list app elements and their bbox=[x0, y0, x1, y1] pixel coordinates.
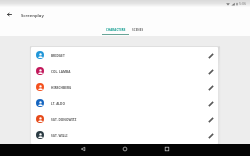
button[interactable]: LT. ALDO bbox=[31, 95, 218, 111]
button[interactable]: Edit bbox=[205, 50, 217, 62]
button[interactable]: Edit bbox=[205, 130, 217, 142]
button[interactable]: Edit bbox=[205, 66, 217, 78]
staticText: HIRSCHBERG bbox=[51, 86, 72, 90]
staticText: 5:06 bbox=[239, 1, 247, 6]
staticText: COL. LAMBA bbox=[51, 70, 71, 74]
button[interactable]: SCENES bbox=[131, 24, 144, 36]
button[interactable]: Edit bbox=[205, 98, 217, 110]
button[interactable]: SGT. DONOWITZ bbox=[31, 111, 218, 127]
button[interactable]: CHARACTERS bbox=[102, 24, 129, 36]
button[interactable]: Home bbox=[120, 144, 130, 154]
staticText: SGT. DONOWITZ bbox=[51, 118, 77, 122]
button[interactable]: Edit bbox=[205, 82, 217, 94]
button[interactable]: HIRSCHBERG bbox=[31, 79, 218, 95]
staticText: Screenplay bbox=[21, 13, 44, 19]
button[interactable]: BRIDGET bbox=[31, 47, 218, 63]
staticText: CHARACTERS bbox=[106, 28, 126, 32]
button[interactable]: Edit bbox=[205, 114, 217, 126]
button[interactable]: Back bbox=[78, 144, 88, 154]
staticText: SCENES bbox=[132, 28, 144, 32]
button[interactable]: Back bbox=[3, 8, 15, 20]
button[interactable]: SGT. WILLI bbox=[31, 127, 218, 143]
staticText: BRIDGET bbox=[51, 54, 65, 58]
staticText: SGT. WILLI bbox=[51, 134, 68, 138]
button[interactable]: COL. LAMBA bbox=[31, 63, 218, 79]
staticText: LT. ALDO bbox=[51, 102, 65, 106]
button[interactable]: Recents bbox=[162, 144, 172, 154]
